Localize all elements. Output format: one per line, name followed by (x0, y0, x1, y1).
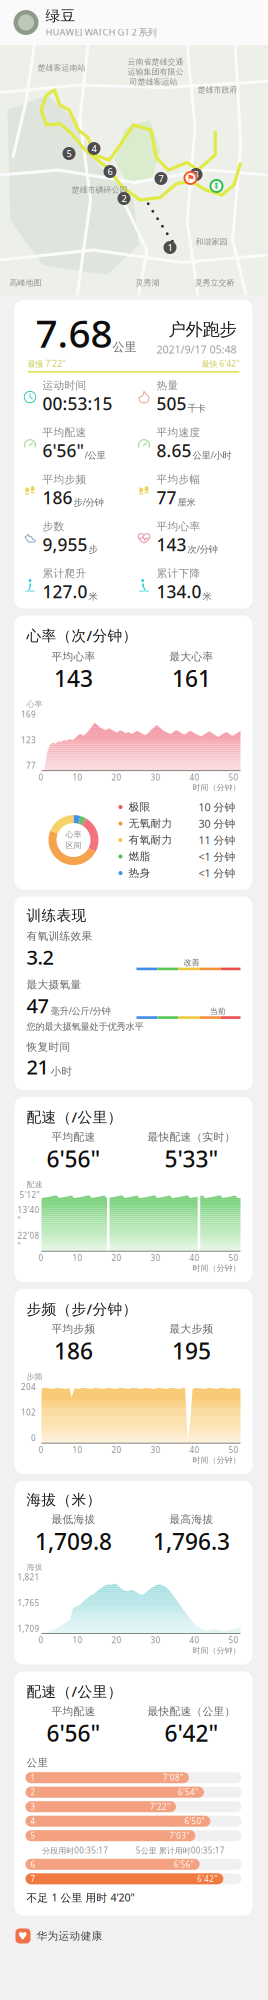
staticText: 配速（/公里） (26, 1681, 122, 1701)
staticText: 不足 1 公里 用时 4'20" (26, 1890, 134, 1904)
staticText: 累计下降 (156, 567, 200, 580)
staticText: 0 (31, 1433, 36, 1443)
staticText: 区间 (65, 840, 81, 850)
staticText: 配速 (26, 1180, 42, 1189)
staticText: 平均步幅 (156, 473, 200, 486)
staticText: 6'56" (46, 1144, 100, 1174)
staticText: 时间（分钟） (192, 1263, 240, 1273)
staticText: 0 (38, 1444, 43, 1455)
staticText: 7'03" (169, 1830, 189, 1841)
staticText: 6 (30, 1859, 35, 1870)
staticText: 最低海拔 (51, 1513, 95, 1526)
staticText: 2 (121, 192, 126, 205)
staticText: 最大摄氧量 (26, 978, 81, 991)
staticText: ⇞ (212, 181, 220, 191)
staticText: 时间（分钟） (192, 1455, 240, 1465)
staticText: 2 (30, 1787, 35, 1797)
staticText: 0 (38, 772, 43, 783)
staticText: 最大心率 (169, 650, 213, 663)
staticText: 灵秀湖 (135, 278, 159, 288)
staticText: 4 (30, 1816, 35, 1826)
staticText: 143 (156, 533, 186, 556)
staticText: 50 (228, 772, 238, 783)
staticText: 6 (107, 165, 112, 178)
staticText: 10 (72, 1635, 82, 1646)
staticText: 当前 (210, 1006, 226, 1016)
staticText: 平均步频 (51, 1322, 95, 1335)
staticText: 30 (150, 1252, 160, 1263)
staticText: 和谐家园 (195, 237, 227, 247)
staticText: 步数 (42, 520, 64, 533)
staticText: 改善 (184, 958, 200, 968)
staticText: 7'08" (163, 1772, 183, 1783)
staticText: 10 (72, 772, 82, 783)
staticText: 平均心率 (156, 520, 200, 533)
staticText: 绿豆 (45, 7, 75, 25)
staticText: ♥ (18, 1930, 28, 1942)
staticText: 7'22" (150, 1801, 170, 1812)
staticText: 9,955 (42, 533, 87, 556)
staticText: 6'42" (164, 1718, 218, 1748)
staticText: 0 (38, 1252, 43, 1263)
staticText: 米 (202, 591, 211, 602)
staticText: 3 (193, 168, 198, 181)
staticText: 次/分钟 (187, 543, 217, 555)
staticText: 楚雄市碘碎公园 (71, 185, 127, 195)
staticText: 时间（分钟） (192, 783, 240, 792)
staticText: 143 (54, 663, 93, 693)
staticText: 楚雄市政府 (197, 85, 237, 95)
staticText: 0 (38, 1635, 43, 1646)
staticText: 1,765 (17, 1598, 39, 1608)
staticText: 灵秀立交桥 (194, 278, 234, 288)
staticText: 毫升/公斤/分钟 (50, 1004, 110, 1017)
staticText: 1,709.8 (35, 1526, 112, 1556)
staticText: 平均速度 (156, 426, 200, 439)
staticText: 6'56" (46, 1718, 100, 1748)
staticText: 10 分钟 (198, 800, 235, 814)
staticText: 10 (72, 1252, 82, 1263)
staticText: 配速（/公里） (26, 1107, 122, 1126)
staticText: 心率 (65, 830, 81, 839)
staticText: 5'12" (19, 1189, 39, 1200)
staticText: 小时 (50, 1065, 72, 1078)
staticText: 161 (172, 663, 211, 693)
staticText: 燃脂 (128, 850, 150, 863)
staticText: <1 分钟 (198, 849, 235, 864)
staticText: 累计爬升 (42, 567, 86, 580)
staticText: 8.65 (156, 439, 191, 462)
staticText: 5'33" (164, 1144, 218, 1174)
staticText: 公里 (26, 1756, 48, 1769)
staticText: 1,709 (17, 1623, 39, 1634)
staticText: 7 (158, 172, 163, 185)
staticText: 186 (42, 486, 72, 509)
staticText: 厘米 (177, 497, 195, 508)
staticText: 10 (72, 1444, 82, 1455)
staticText: 20 (111, 1444, 121, 1455)
staticText: 步频（步/分钟） (26, 1299, 137, 1318)
staticText: 海拔 (26, 1562, 42, 1572)
staticText: 30 (150, 772, 160, 783)
staticText: 5公里 累计用时00:35:17 (136, 1845, 225, 1856)
staticText: 3.2 (26, 944, 53, 970)
staticText: 195 (172, 1335, 211, 1366)
staticText: 步频 (26, 1372, 42, 1381)
staticText: 无氧耐力 (128, 817, 172, 830)
staticText: 运输集团有限公 (127, 67, 183, 77)
staticText: 最慢 7'22" (27, 358, 65, 369)
staticText: 热身 (128, 866, 150, 880)
staticText: 4 (91, 142, 96, 155)
staticText: 20 (111, 1635, 121, 1646)
staticText: 平均配速 (51, 1130, 95, 1144)
staticText: 22'08" (17, 1230, 39, 1251)
staticText: 平均配速 (42, 426, 86, 439)
staticText: 最快配速（公里） (147, 1705, 235, 1718)
staticText: 127.0 (42, 580, 87, 603)
staticText: 公里/小时 (192, 449, 231, 461)
staticText: 204 (21, 1381, 36, 1392)
staticText: 公里 (112, 340, 136, 354)
staticText: 平均心率 (51, 650, 95, 663)
staticText: 3 (30, 1801, 35, 1812)
staticText: HUAWEI WATCH GT 2 系列 (45, 26, 156, 38)
staticText: 50 (228, 1252, 238, 1263)
staticText: 1 (30, 1772, 35, 1783)
